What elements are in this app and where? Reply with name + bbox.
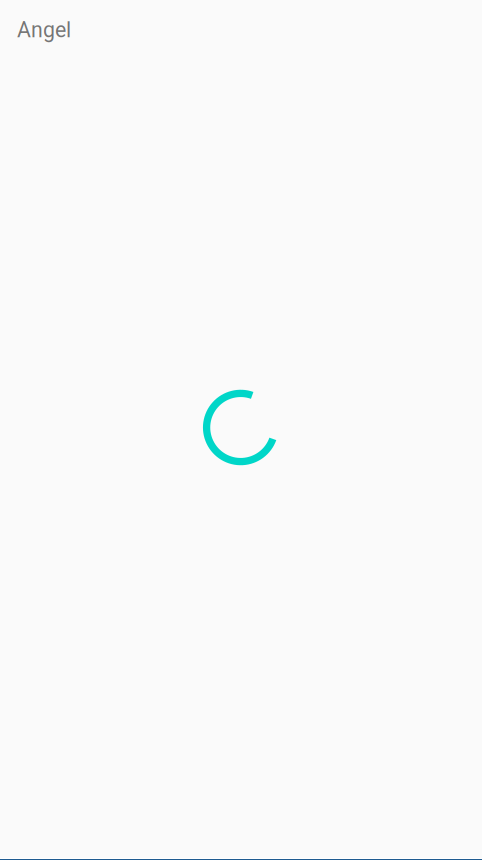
staticText: Angel xyxy=(17,17,71,42)
button[interactable]: Angel xyxy=(17,17,71,42)
